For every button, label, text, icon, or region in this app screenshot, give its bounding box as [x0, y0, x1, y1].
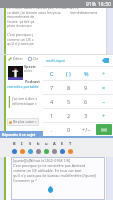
button[interactable]: Format — [35, 148, 41, 154]
button[interactable]: ÷ — [96, 68, 112, 79]
button[interactable]: Ne plus suivre c — [7, 118, 39, 126]
staticText: − — [102, 98, 106, 105]
button[interactable]: Éditer — [7, 55, 24, 62]
button[interactable]: 6 — [78, 96, 94, 107]
staticText: [quote][b]Nihiut (x1262) 0958 1/6] — [13, 158, 71, 163]
staticText: ÷ — [102, 70, 106, 77]
staticText: B — [13, 141, 16, 146]
button[interactable]: Format — [43, 148, 49, 154]
staticText: b — [37, 141, 40, 146]
staticText: qu'il n'y aura pas de bureau multifenêtr… — [13, 173, 97, 178]
staticText: 7 — [50, 84, 54, 91]
staticText: Éditer — [13, 56, 23, 61]
staticText: 2 — [67, 112, 71, 119]
staticText: Comment ça ? — [13, 178, 37, 183]
button[interactable]: ( ) — [61, 68, 76, 79]
button[interactable]: C — [44, 68, 59, 79]
button[interactable]: 2 — [61, 110, 76, 121]
button[interactable]: b — [35, 140, 41, 146]
button[interactable]: 1 — [44, 110, 59, 121]
staticText: J'ai rien à dire s — [12, 96, 38, 101]
staticText: C'est pourquoi j — [7, 32, 34, 37]
staticText: × — [102, 84, 106, 91]
button[interactable]: 9 — [78, 82, 94, 93]
staticText: consoles portable — [7, 84, 39, 89]
button[interactable]: Format — [51, 148, 57, 154]
button[interactable]: Format — [59, 148, 65, 154]
button[interactable]: Format — [11, 148, 17, 154]
staticText: 8 — [67, 84, 71, 91]
button[interactable]: − — [96, 96, 112, 107]
staticText: u — [45, 141, 48, 146]
button[interactable] — [11, 157, 105, 200]
staticText: 0 — [67, 126, 71, 133]
staticText: Cle — [33, 56, 39, 61]
staticText: Podcast — [25, 79, 40, 84]
staticText: immédiatement — [70, 10, 98, 15]
staticText: Répondre à ce sujet — [2, 132, 36, 137]
button[interactable]: S — [27, 140, 33, 146]
button[interactable]: 7 — [44, 82, 59, 93]
staticText: 6 — [84, 98, 88, 105]
staticText: 16:30 — [98, 1, 111, 8]
staticText: l'autre. ça fait ça — [7, 19, 35, 24]
button[interactable]: E — [59, 140, 65, 146]
button[interactable]: A — [51, 140, 57, 146]
staticText: informatique c — [12, 101, 37, 106]
staticText: 5 — [67, 98, 71, 105]
button[interactable]: Format — [19, 148, 25, 154]
staticText: ce dont j'ai besoin sous les yeux — [7, 10, 61, 15]
staticText: Ne plus suivre c — [13, 120, 37, 124]
staticText: . — [51, 126, 53, 133]
staticText: plein écran sur — [7, 23, 33, 28]
button[interactable]: Format — [67, 148, 73, 154]
staticText: ce choisir aussi m'aurait plu, en tout c… — [7, 5, 79, 10]
button[interactable]: 3 — [78, 110, 94, 121]
button[interactable]: Cle — [27, 55, 40, 62]
button[interactable]: % — [78, 68, 94, 79]
button[interactable]: + — [96, 110, 112, 121]
button[interactable]: × — [96, 82, 112, 93]
staticText: % — [84, 70, 89, 77]
staticText: I — [21, 141, 23, 146]
staticText: 1 — [50, 112, 54, 119]
button[interactable]: Répondre à ce sujet — [0, 131, 113, 138]
staticText: T — [69, 141, 72, 146]
button[interactable]: u — [43, 140, 49, 146]
staticText: writes — [24, 69, 33, 73]
button[interactable]: . — [44, 124, 59, 135]
button[interactable]: 5 — [61, 96, 76, 107]
staticText: comme un OS c — [7, 37, 34, 42]
staticText: + — [102, 112, 106, 119]
staticText: multi-input — [46, 58, 65, 63]
button[interactable]: T — [67, 140, 73, 146]
button[interactable]: B — [11, 140, 17, 146]
button[interactable]: 4 — [44, 96, 59, 107]
staticText: 3 — [84, 112, 88, 119]
staticText: A — [53, 141, 56, 146]
staticText: E — [61, 141, 64, 146]
staticText: +/− — [82, 126, 91, 133]
button[interactable]: Format — [27, 148, 33, 154]
staticText: C'est pourquoi je ne considère pas Andro… — [13, 163, 86, 168]
staticText: ( ) — [66, 70, 71, 77]
button[interactable]: I — [19, 140, 25, 146]
staticText: 9 — [84, 84, 88, 91]
button[interactable]: 8 — [61, 82, 76, 93]
button[interactable]: Backspace — [101, 58, 109, 63]
staticText: 4 — [50, 98, 54, 105]
button[interactable]: Article thumbnail — [8, 66, 23, 80]
staticText: Spectr — [24, 64, 37, 69]
staticText: énormément de — [7, 14, 35, 19]
staticText: qu'il n'y aura pa — [7, 41, 34, 46]
staticText: C — [50, 70, 54, 77]
staticText: comme un OS utilisable. En tous cas tant — [13, 168, 82, 173]
button[interactable]: +/− — [78, 124, 94, 135]
staticText: S — [29, 141, 32, 146]
button[interactable] — [96, 124, 112, 135]
button[interactable]: 0 — [61, 124, 76, 135]
staticText: 91% — [86, 1, 96, 8]
